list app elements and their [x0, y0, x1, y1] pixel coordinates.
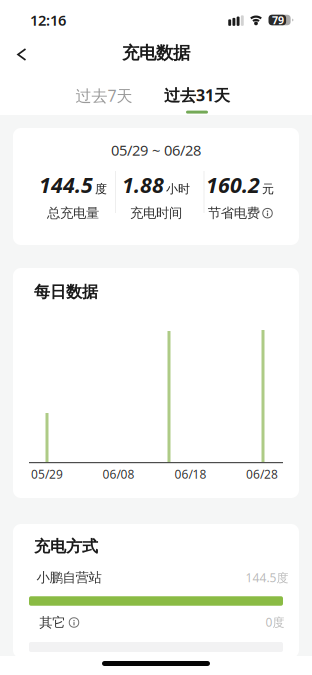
staticText: 0度 [265, 614, 284, 630]
button[interactable]: 节省电费说明 [263, 208, 272, 218]
staticText: 05/29 [31, 466, 63, 482]
staticText: 160.2 [206, 171, 260, 199]
staticText: 小时 [166, 182, 190, 196]
staticText: 过去31天 [164, 84, 230, 106]
staticText: 06/28 [246, 466, 278, 482]
button[interactable]: 过去31天 [164, 84, 230, 114]
button[interactable]: 其它说明 [69, 618, 79, 627]
staticText: 每日数据 [34, 282, 98, 302]
staticText: 05/29 ~ 06/28 [111, 140, 201, 160]
staticText: 144.5度 [245, 569, 288, 585]
staticText: 充电方式 [34, 537, 98, 556]
staticText: 其它 [39, 614, 65, 631]
staticText: 节省电费 [208, 205, 260, 221]
staticText: 度 [95, 182, 107, 196]
staticText: 充电时间 [130, 205, 182, 221]
button[interactable]: Back [6, 37, 37, 72]
staticText: 06/08 [102, 466, 134, 482]
staticText: 总充电量 [47, 205, 99, 221]
staticText: 06/18 [174, 466, 206, 482]
staticText: 过去7天 [75, 85, 132, 106]
staticText: 充电数据 [122, 42, 190, 64]
staticText: 元 [262, 182, 274, 196]
staticText: 1.88 [122, 171, 164, 199]
staticText: 小鹏自营站 [36, 569, 101, 586]
staticText: 79 [272, 13, 284, 27]
button[interactable]: 过去7天 [69, 77, 138, 114]
staticText: 144.5 [39, 171, 93, 199]
staticText: 12:16 [30, 10, 66, 30]
